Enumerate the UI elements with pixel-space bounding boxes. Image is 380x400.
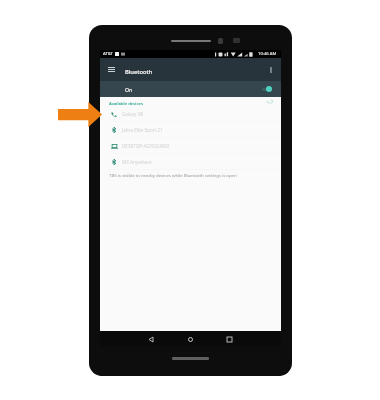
button[interactable]: DESKTOP-4G7K2LM92 (100, 138, 281, 154)
button[interactable]: Galaxy S8 (100, 106, 281, 122)
staticText: Bluetooth (125, 68, 153, 76)
button[interactable]: Back (144, 332, 158, 346)
staticText: Galaxy S8 (122, 111, 143, 117)
staticText: DESKTOP-4G7K2LM92 (122, 143, 170, 149)
button[interactable]: Home (183, 332, 197, 346)
staticText: AT&T (103, 51, 113, 57)
button[interactable]: On (100, 81, 281, 97)
staticText: 10:46 AM (258, 51, 277, 57)
button[interactable]: Jabra Elite Sport 21 (100, 122, 281, 138)
staticText: Jabra Elite Sport 21 (122, 127, 163, 133)
button[interactable]: Recent apps (222, 332, 236, 346)
button[interactable]: Open navigation drawer (100, 58, 122, 81)
button[interactable]: MX Anywhere (100, 154, 281, 170)
staticText: TBS is visible to nearby devices while B… (109, 172, 237, 178)
button[interactable]: More options (263, 58, 279, 81)
staticText: On (125, 86, 133, 93)
staticText: Available devices (109, 101, 143, 106)
staticText: MX Anywhere (122, 159, 152, 165)
